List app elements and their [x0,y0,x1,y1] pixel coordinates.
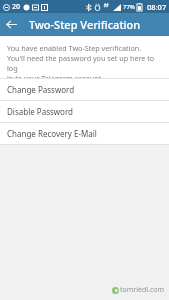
staticText: 08:07 [147,2,167,12]
staticText: Two-Step Verification [29,17,141,32]
staticText: tomriedl.com [120,285,165,295]
staticText: You have enabled Two-Step verification. … [7,43,164,78]
staticText: 20 [12,2,21,12]
button[interactable]: Disable Password [0,101,169,122]
button[interactable]: Back [0,13,23,36]
button[interactable]: Change Password [0,79,169,100]
button[interactable]: Change Recovery E-Mail [0,123,169,144]
staticText: Change Recovery E-Mail [7,128,97,139]
staticText: 77% [123,3,135,11]
staticText: Change Password [7,84,75,95]
staticText: Disable Password [7,106,73,117]
